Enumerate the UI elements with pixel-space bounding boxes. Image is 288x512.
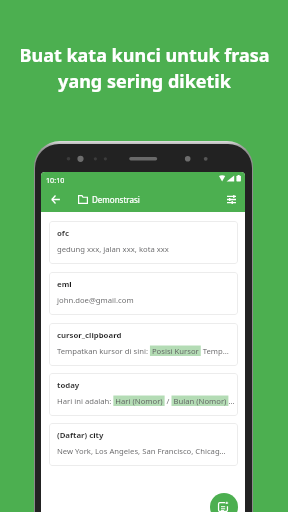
staticText: Buat kata kunci untuk frasa yang sering … (19, 43, 270, 94)
button[interactable]: (Daftar) city (49, 423, 238, 466)
button[interactable]: Filter settings (221, 189, 241, 209)
button[interactable]: cursor_clipboard (49, 323, 238, 366)
staticText: john.doe@gmail.com (57, 295, 134, 305)
button[interactable]: eml (49, 272, 238, 315)
button[interactable]: Add new phrase (210, 493, 238, 512)
staticText: 10:10 (46, 175, 65, 185)
staticText: gedung xxx, jalan xxx, kota xxx (57, 244, 169, 254)
staticText: today (57, 380, 80, 391)
staticText: ofc (57, 228, 69, 239)
staticText: cursor_clipboard (57, 330, 122, 341)
staticText: New York, Los Angeles, San Francisco, Ch… (57, 446, 226, 456)
staticText: Demonstrasi (92, 194, 140, 205)
staticText: (Daftar) city (57, 430, 104, 441)
button[interactable]: Back (45, 189, 65, 209)
staticText: Hari ini adalah: Hari (Nomor) / Bulan (N… (57, 396, 235, 406)
staticText: Tempatkan kursor di sini: Posisi Kursor … (57, 346, 229, 356)
button[interactable]: ofc (49, 221, 238, 264)
staticText: eml (57, 279, 72, 290)
button[interactable]: today (49, 373, 238, 416)
